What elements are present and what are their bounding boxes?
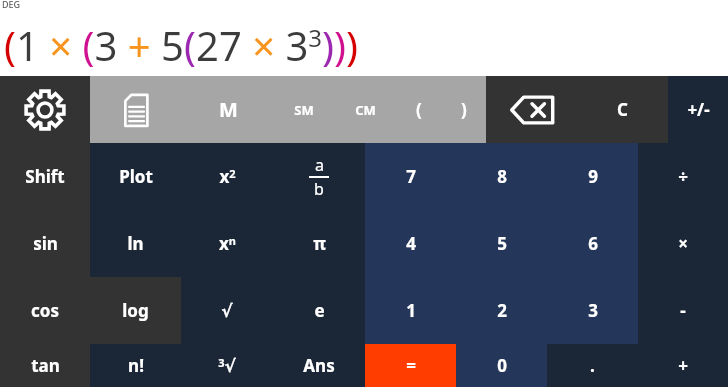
staticText: e <box>314 299 325 322</box>
staticText: log <box>122 299 149 322</box>
staticText: - <box>680 299 686 322</box>
staticText: 7 <box>406 165 416 188</box>
button[interactable]: e <box>273 277 365 344</box>
button[interactable]: log <box>90 277 181 344</box>
staticText: Plot <box>119 165 153 188</box>
staticText: n! <box>128 354 144 377</box>
staticText: M <box>219 96 238 123</box>
button[interactable]: xn <box>181 210 273 277</box>
button[interactable]: SM <box>274 76 334 143</box>
staticText: 8 <box>497 165 507 188</box>
button[interactable]: . <box>547 344 638 387</box>
button[interactable]: 2 <box>456 277 547 344</box>
staticText: √ <box>221 301 233 321</box>
button[interactable]: Backspace <box>486 76 577 143</box>
button[interactable]: 9 <box>547 143 638 210</box>
button[interactable]: × <box>638 210 728 277</box>
staticText: C <box>617 98 628 121</box>
staticText: 9 <box>588 165 598 188</box>
button[interactable]: 5 <box>456 210 547 277</box>
button[interactable]: C <box>577 76 668 143</box>
staticText: ÷ <box>678 165 688 188</box>
staticText: ) <box>461 98 467 121</box>
staticText: SM <box>294 101 314 119</box>
button[interactable]: = <box>365 344 456 387</box>
staticText: DEG <box>2 0 21 10</box>
staticText: π <box>313 232 326 255</box>
staticText: Shift <box>25 165 65 188</box>
staticText: b <box>314 178 324 200</box>
staticText: ln <box>127 232 144 255</box>
button[interactable]: π <box>273 210 365 277</box>
button[interactable]: x2 <box>181 143 273 210</box>
staticText: tan <box>31 354 60 377</box>
button[interactable]: 1 <box>365 277 456 344</box>
button[interactable]: 8 <box>456 143 547 210</box>
button[interactable]: Notes <box>90 76 182 143</box>
button[interactable]: Ans <box>273 344 365 387</box>
button[interactable]: √ <box>181 277 273 344</box>
staticText: × <box>678 232 688 255</box>
button[interactable]: ÷ <box>638 143 728 210</box>
button[interactable]: n! <box>90 344 181 387</box>
button[interactable]: 6 <box>547 210 638 277</box>
button[interactable]: + <box>638 344 728 387</box>
button[interactable]: ) <box>441 76 486 143</box>
button[interactable]: 4 <box>365 210 456 277</box>
staticText: cos <box>31 299 59 322</box>
staticText: 5 <box>497 232 507 255</box>
button[interactable]: ln <box>90 210 181 277</box>
button[interactable]: a <box>273 143 365 210</box>
button[interactable]: ( <box>396 76 441 143</box>
staticText: a <box>315 154 324 176</box>
staticText: Ans <box>303 354 335 377</box>
button[interactable]: Shift <box>0 143 90 210</box>
staticText: 3√ <box>218 355 236 376</box>
button[interactable]: M <box>182 76 274 143</box>
staticText: +/- <box>687 98 710 121</box>
staticText: 4 <box>406 232 416 255</box>
staticText: 0 <box>497 354 507 377</box>
button[interactable]: +/- <box>668 76 728 143</box>
staticText: 6 <box>588 232 598 255</box>
button[interactable]: CM <box>334 76 396 143</box>
button[interactable]: 7 <box>365 143 456 210</box>
staticText: sin <box>33 232 58 255</box>
staticText: ( <box>416 98 422 121</box>
staticText: x2 <box>219 165 236 188</box>
staticText: CM <box>355 101 376 119</box>
staticText: 1 <box>406 299 416 322</box>
button[interactable]: tan <box>0 344 90 387</box>
button[interactable]: Plot <box>90 143 181 210</box>
button[interactable]: sin <box>0 210 90 277</box>
staticText: + <box>678 354 688 377</box>
staticText: (1 × (3 + 5(27 × 33))) <box>4 18 359 72</box>
button[interactable]: Settings <box>0 76 90 143</box>
staticText: 2 <box>497 299 507 322</box>
staticText: 3 <box>588 299 598 322</box>
staticText: = <box>406 354 416 377</box>
button[interactable]: - <box>638 277 728 344</box>
button[interactable]: cos <box>0 277 90 344</box>
staticText: xn <box>219 232 236 255</box>
staticText: . <box>590 354 595 377</box>
button[interactable]: 3 <box>547 277 638 344</box>
button[interactable]: 3√ <box>181 344 273 387</box>
button[interactable]: 0 <box>456 344 547 387</box>
